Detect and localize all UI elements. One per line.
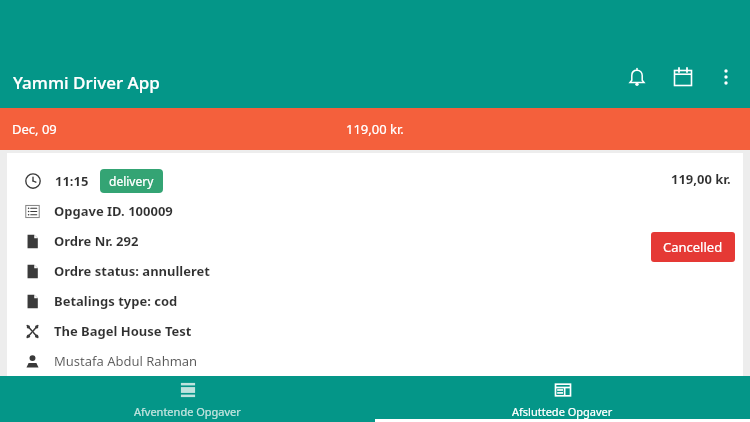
button[interactable]: Notifications <box>614 54 660 100</box>
staticText: Afventende Opgaver <box>134 404 241 419</box>
staticText: Ordre Nr. 292 <box>54 232 139 250</box>
staticText: 11:15 <box>55 172 89 190</box>
staticText: Mustafa Abdul Rahman <box>54 352 198 370</box>
button[interactable]: Afsluttede Opgaver <box>375 376 750 422</box>
staticText: 119,00 kr. <box>671 170 731 188</box>
staticText: delivery <box>109 173 154 189</box>
button[interactable]: Cancelled <box>651 232 735 262</box>
staticText: Dec, 09 <box>12 120 57 138</box>
staticText: Cancelled <box>663 238 723 256</box>
staticText: Afsluttede Opgaver <box>512 404 613 419</box>
staticText: Ordre status: annulleret <box>54 262 210 280</box>
staticText: Yammi Driver App <box>13 71 160 94</box>
staticText: Betalings type: cod <box>54 292 178 310</box>
button[interactable]: Afventende Opgaver <box>0 376 375 422</box>
staticText: 119,00 kr. <box>346 120 404 138</box>
button[interactable]: 11:15 <box>7 153 743 376</box>
staticText: Opgave ID. 100009 <box>54 202 173 220</box>
button[interactable]: More options <box>706 57 746 97</box>
button[interactable]: Calendar <box>660 54 706 100</box>
staticText: The Bagel House Test <box>54 322 192 340</box>
